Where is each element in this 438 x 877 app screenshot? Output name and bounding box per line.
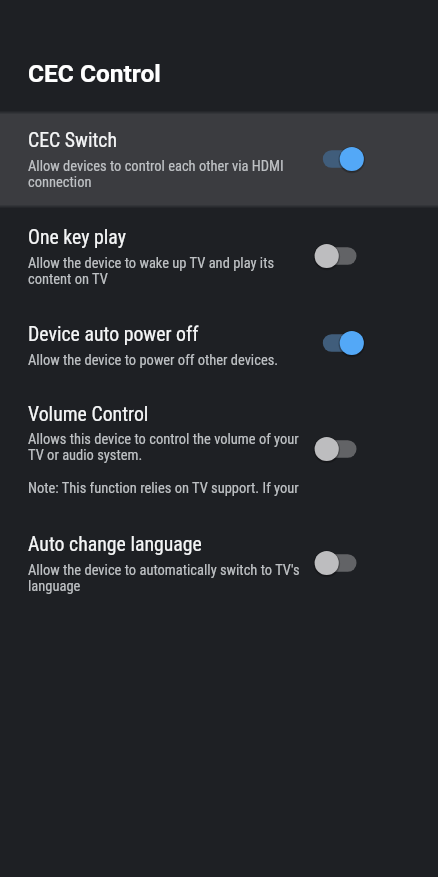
button[interactable]: CEC Control (0, 0, 438, 111)
staticText: One key play (28, 226, 126, 249)
button[interactable]: Auto change language (315, 549, 365, 577)
button[interactable]: Volume Control (315, 435, 365, 463)
staticText: Auto change language (28, 533, 202, 556)
staticText: Allow devices to control each other via … (28, 158, 301, 191)
staticText: Allows this device to control the volume… (28, 431, 301, 464)
staticText: Allow the device to power off other devi… (28, 352, 279, 369)
button[interactable]: Device auto power off (315, 329, 365, 357)
staticText: Device auto power off (28, 323, 199, 346)
staticText: Allow the device to wake up TV and play … (28, 255, 301, 288)
staticText: Note: This function relies on TV support… (28, 480, 299, 497)
button[interactable]: CEC Switch (315, 145, 365, 173)
staticText: Allow the device to automatically switch… (28, 562, 301, 595)
staticText: CEC Control (28, 59, 161, 88)
staticText: Volume Control (28, 403, 149, 426)
button[interactable]: One key play (315, 242, 365, 270)
staticText: CEC Switch (28, 129, 118, 152)
